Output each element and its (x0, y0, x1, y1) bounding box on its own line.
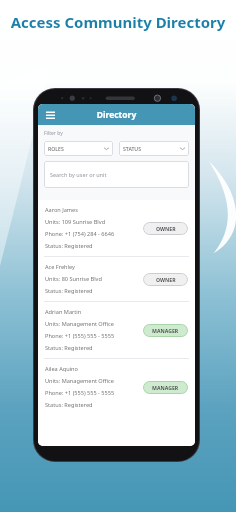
staticText: Adrian Martin (45, 308, 82, 316)
staticText: Status: Registered (45, 344, 93, 352)
staticText: STATUS (123, 145, 142, 152)
staticText: Ace Frehley (45, 263, 75, 271)
staticText: MANAGER (152, 384, 179, 391)
staticText: Directory (38, 109, 195, 121)
staticText: Units: Management Office (45, 320, 114, 328)
button[interactable]: MANAGER (143, 381, 188, 394)
staticText: Units: 109 Sunrise Blvd (45, 218, 106, 226)
staticText: Phone: +1 (555) 555 - 5555 (45, 389, 115, 397)
button[interactable]: Ace Frehley (38, 257, 195, 301)
staticText: Search by user or unit (50, 171, 107, 178)
button[interactable]: OWNER (143, 273, 188, 286)
staticText: OWNER (156, 276, 176, 283)
button[interactable]: STATUS (119, 141, 189, 156)
staticText: Status: Registered (45, 242, 93, 250)
staticText: Units: 80 Sunrise Blvd (45, 275, 102, 283)
button[interactable]: Aaron James (38, 200, 195, 256)
staticText: Filter by (44, 130, 63, 137)
staticText: OWNER (156, 225, 176, 232)
button[interactable]: ROLES (44, 141, 113, 156)
button[interactable]: Ailea Aquino (38, 359, 195, 415)
button[interactable]: Adrian Martin (38, 302, 195, 358)
staticText: Phone: +1 (555) 555 - 5555 (45, 332, 115, 340)
staticText: Ailea Aquino (45, 365, 78, 373)
staticText: Status: Registered (45, 287, 93, 295)
staticText: Units: Management Office (45, 377, 114, 385)
staticText: Phone: +1 (754) 284 - 6646 (45, 230, 115, 238)
staticText: Status: Registered (45, 401, 93, 409)
button[interactable]: OWNER (143, 222, 188, 235)
button[interactable]: Open navigation menu (43, 108, 57, 122)
staticText: ROLES (48, 145, 64, 152)
staticText: MANAGER (152, 327, 179, 334)
staticText: Aaron James (45, 206, 78, 214)
staticText: Access Community Directory (8, 12, 228, 32)
button[interactable]: MANAGER (143, 324, 188, 337)
button[interactable]: Search by user or unit (44, 161, 189, 188)
